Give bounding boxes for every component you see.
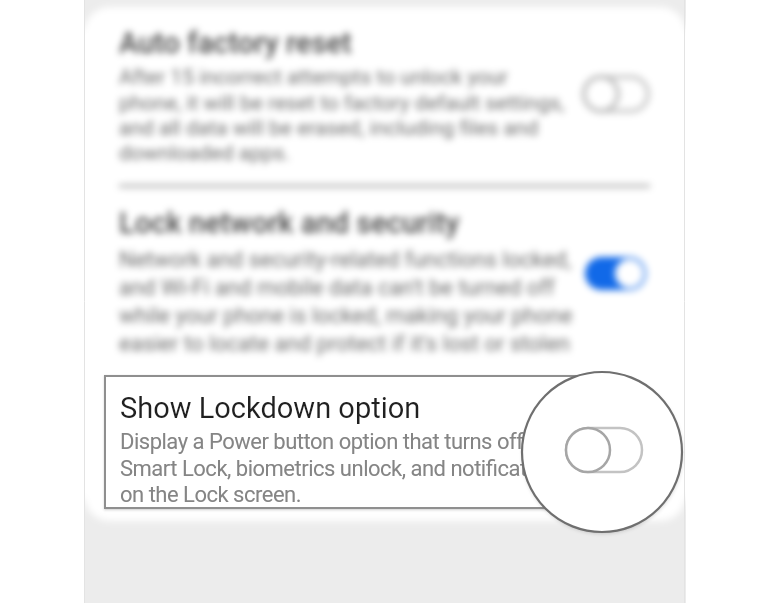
staticText: Show Lockdown option [120, 391, 421, 425]
staticText: Auto factory reset [119, 26, 352, 60]
staticText: Display a Power button option that turns… [120, 429, 566, 507]
button[interactable] [98, 196, 670, 366]
staticText: Lock network and security [119, 206, 460, 240]
staticText: Network and security-related functions l… [119, 247, 573, 357]
button[interactable] [522, 372, 682, 532]
button[interactable] [98, 7, 670, 187]
staticText: After 15 incorrect attempts to unlock yo… [119, 65, 565, 165]
button[interactable]: Show Lockdown option [104, 375, 610, 509]
